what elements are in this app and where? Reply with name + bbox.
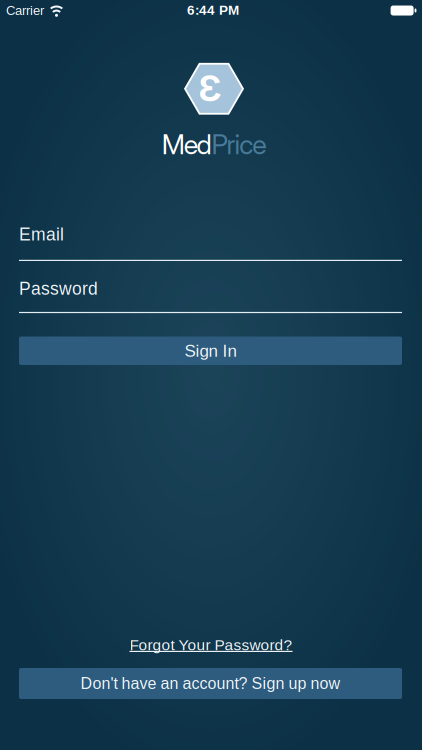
staticText: Sign In xyxy=(184,341,236,360)
staticText: 6:44 PM xyxy=(187,2,239,18)
staticText: Forgot Your Password? xyxy=(129,636,292,654)
button[interactable]: Email xyxy=(19,221,402,267)
staticText: Ɛ xyxy=(198,68,221,109)
staticText: Don't have an account? Sign up now xyxy=(80,675,340,692)
button[interactable]: Forgot Your Password? xyxy=(129,636,292,654)
button[interactable]: Don't have an account? Sign up now xyxy=(19,668,402,699)
button[interactable]: Sign In xyxy=(19,336,402,365)
staticText: Password xyxy=(19,279,98,298)
staticText: Carrier xyxy=(6,3,44,18)
staticText: Med xyxy=(162,128,212,161)
staticText: Email xyxy=(19,225,64,244)
button[interactable]: Password xyxy=(19,273,402,319)
staticText: Price xyxy=(212,128,266,161)
